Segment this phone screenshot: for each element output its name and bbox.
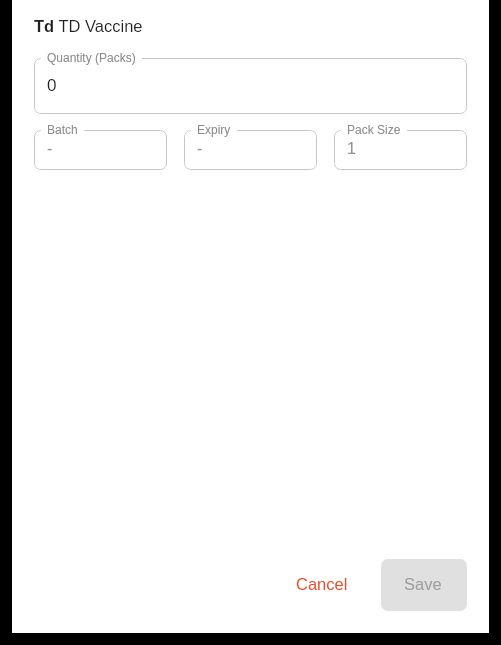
button[interactable]: 1	[334, 130, 467, 170]
staticText: Save	[404, 575, 442, 593]
staticText: Td TD Vaccine	[34, 17, 143, 35]
staticText: Expiry	[197, 123, 231, 136]
staticText: Batch	[47, 123, 78, 136]
staticText: -	[47, 140, 53, 158]
staticText: -	[197, 140, 203, 158]
staticText: 0	[47, 76, 57, 95]
button[interactable]: -	[184, 130, 317, 170]
button[interactable]: Save	[381, 559, 467, 611]
button[interactable]: Cancel	[278, 564, 364, 606]
button[interactable]: 0	[34, 58, 467, 114]
staticText: Quantity (Packs)	[47, 51, 136, 64]
button[interactable]: -	[34, 130, 167, 170]
staticText: 1	[347, 140, 356, 158]
staticText: Pack Size	[347, 123, 401, 136]
staticText: Cancel	[296, 575, 348, 593]
